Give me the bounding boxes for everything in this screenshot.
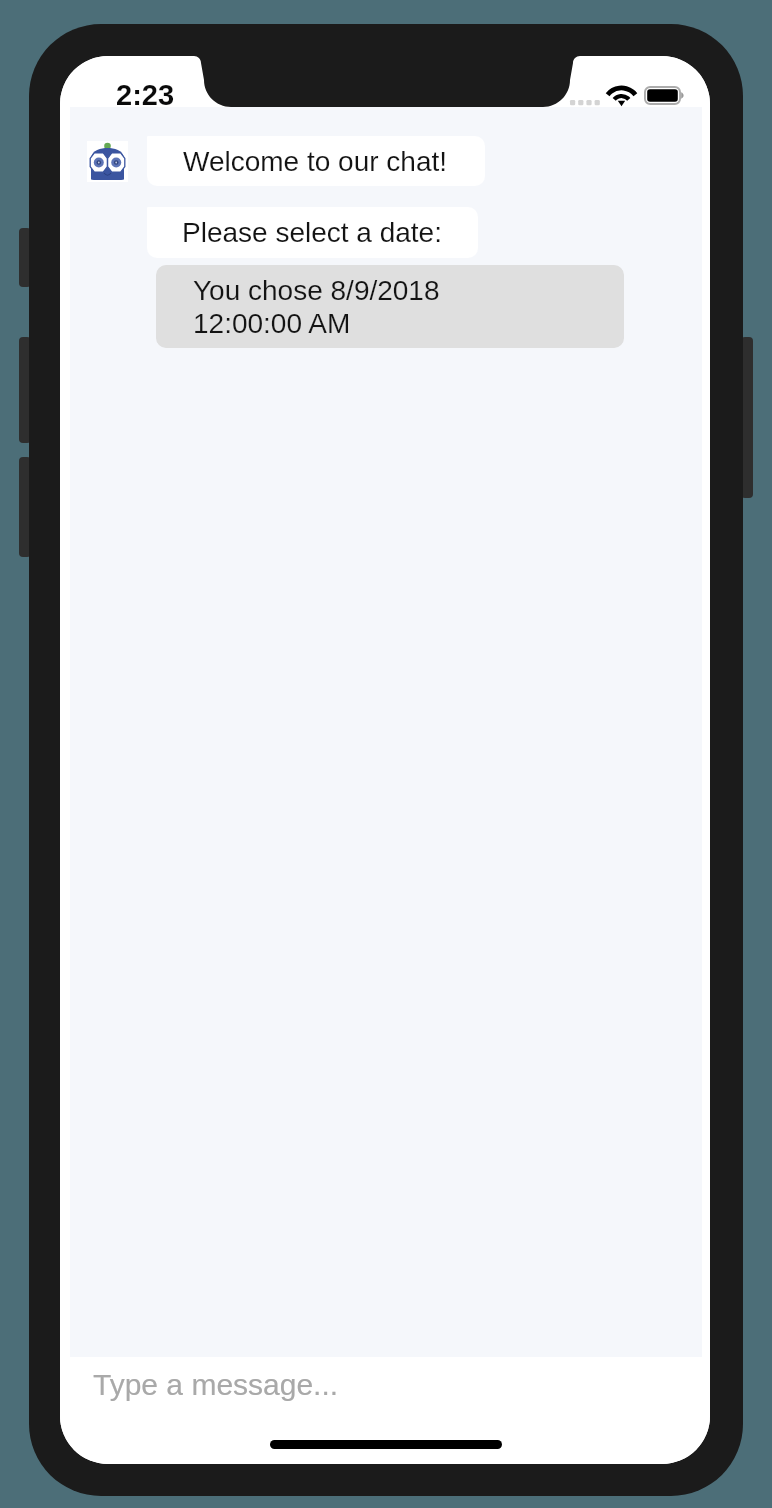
staticText: You chose 8/9/2018 12:00:00 AM (193, 274, 440, 340)
button[interactable]: Type a message... (60, 1357, 710, 1464)
button[interactable]: Welcome to our chat! (147, 136, 485, 186)
button[interactable]: Please select a date: (147, 207, 478, 258)
staticText: Please select a date: (182, 216, 442, 249)
other: Battery (644, 86, 686, 105)
button[interactable]: You chose 8/9/2018 12:00:00 AM (156, 265, 624, 348)
staticText: Welcome to our chat! (183, 145, 448, 178)
other: Wi-Fi (608, 85, 635, 105)
staticText: 2:23 (116, 79, 175, 111)
other: Bot avatar (87, 141, 128, 182)
